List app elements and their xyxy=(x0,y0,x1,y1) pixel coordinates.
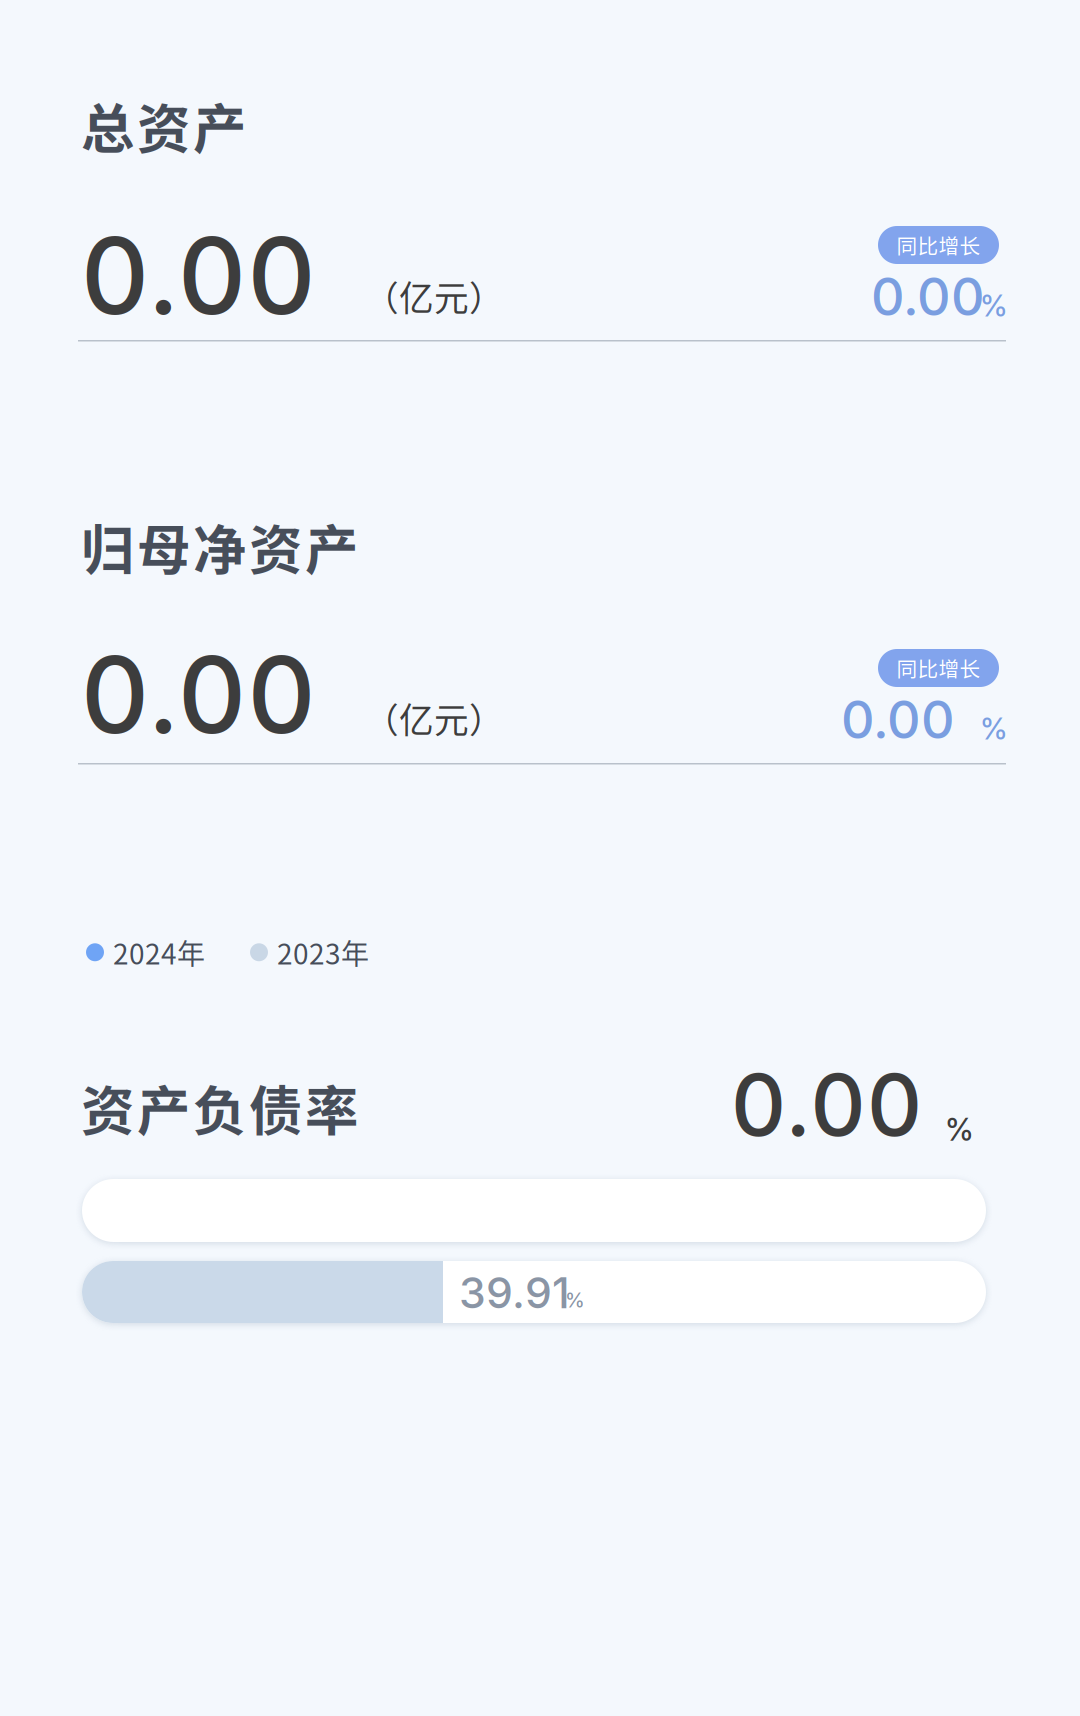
staticText: 资产负债率 xyxy=(81,1069,358,1146)
staticText: 总资产 xyxy=(81,87,246,164)
staticText: （亿元） xyxy=(364,693,504,743)
staticText: % xyxy=(980,711,1008,746)
staticText: 0.00 xyxy=(841,688,955,751)
staticText: 0.00 xyxy=(871,265,985,328)
staticText: 同比增长 xyxy=(896,653,980,683)
staticText: 2023年 xyxy=(277,932,369,972)
staticText: （亿元） xyxy=(364,271,504,321)
staticText: 0.00 xyxy=(81,212,315,339)
button[interactable]: 2024年 xyxy=(86,932,205,972)
staticText: % xyxy=(565,1288,585,1312)
button[interactable]: 同比增长 xyxy=(878,226,999,264)
staticText: 0.00 xyxy=(731,1053,922,1156)
staticText: 0.00 xyxy=(81,631,315,758)
staticText: 2024年 xyxy=(113,932,205,972)
staticText: 同比增长 xyxy=(896,230,980,260)
button[interactable]: 同比增长 xyxy=(878,649,999,687)
staticText: 归母净资产 xyxy=(81,508,358,585)
button[interactable]: 2023年 xyxy=(250,932,369,972)
staticText: % xyxy=(980,288,1008,323)
button[interactable]: 归母净资产 xyxy=(0,421,1080,843)
staticText: 39.91 xyxy=(459,1267,570,1319)
staticText: % xyxy=(945,1111,974,1148)
button[interactable]: 总资产 xyxy=(0,0,1080,420)
